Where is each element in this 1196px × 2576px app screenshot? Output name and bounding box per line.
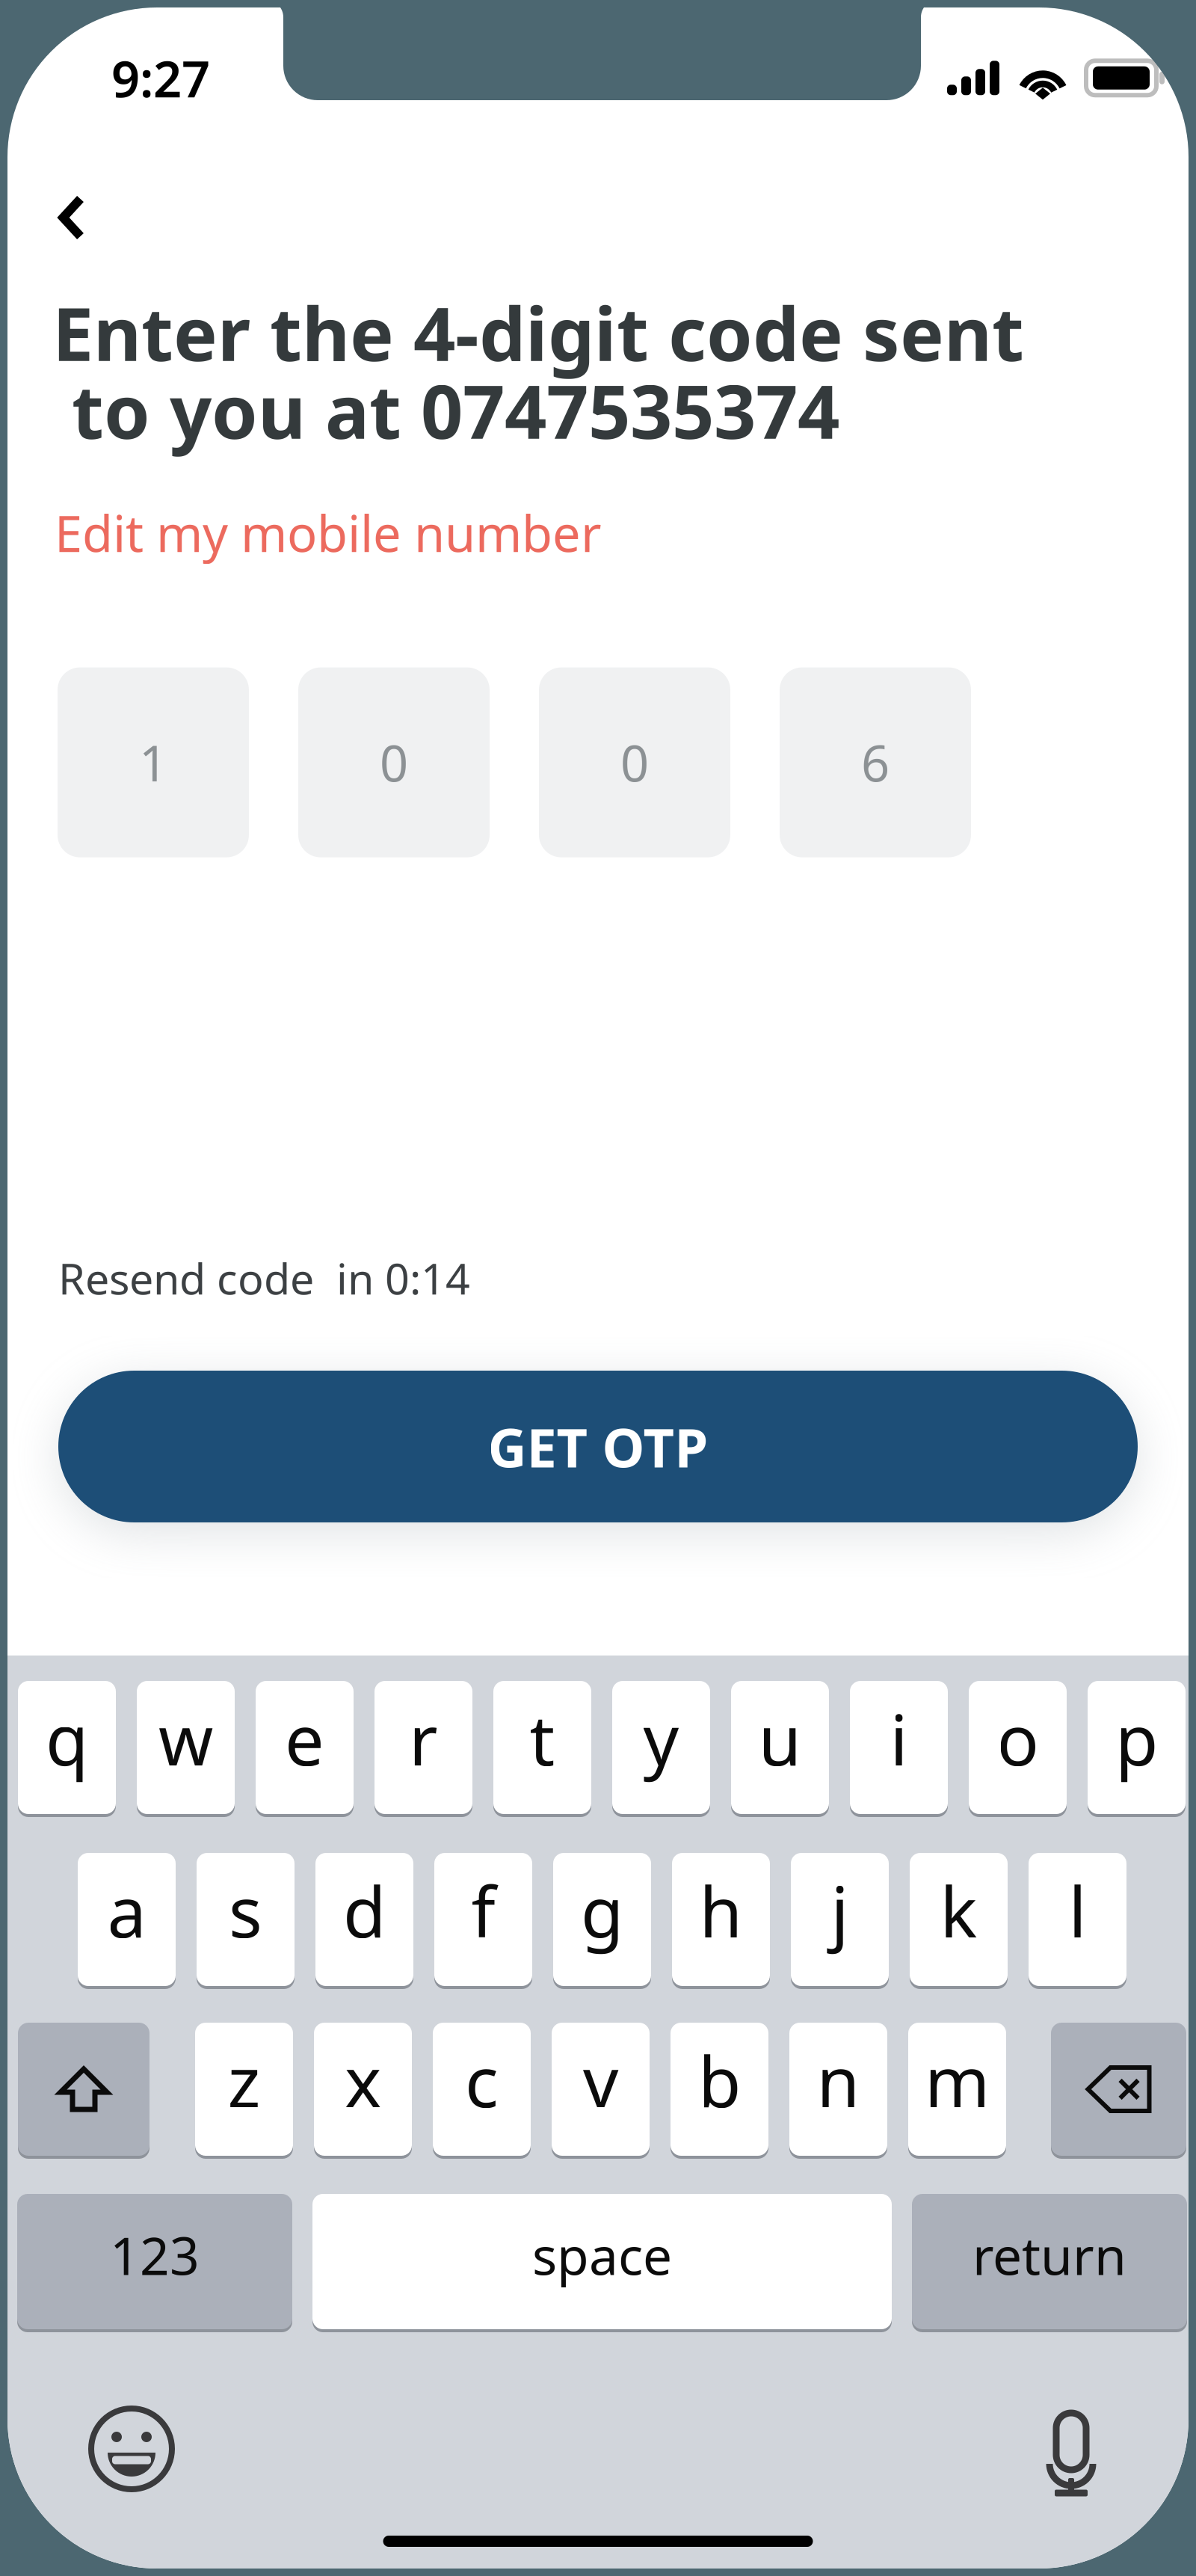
staticText: x	[345, 2034, 381, 2127]
staticText: GET OTP	[488, 1411, 708, 1482]
button[interactable]: Edit my mobile number	[55, 499, 602, 566]
staticText: c	[465, 2034, 499, 2127]
button[interactable]: i	[850, 1681, 948, 1814]
button[interactable]: c	[433, 2023, 531, 2156]
staticText: i	[890, 1692, 908, 1785]
staticText: s	[229, 1864, 262, 1957]
button[interactable]: l	[1029, 1853, 1126, 1986]
button[interactable]: a	[78, 1853, 176, 1986]
staticText: 9:27	[111, 45, 210, 111]
button[interactable]: z	[195, 2023, 293, 2156]
button[interactable]: v	[552, 2023, 650, 2156]
staticText: m	[925, 2034, 990, 2127]
staticText: u	[758, 1692, 802, 1785]
button[interactable]: Back	[36, 182, 108, 253]
button[interactable]: m	[908, 2023, 1006, 2156]
staticText: Edit my mobile number	[55, 499, 602, 566]
staticText: q	[46, 1692, 88, 1785]
button[interactable]: g	[553, 1853, 651, 1986]
button[interactable]: y	[612, 1681, 710, 1814]
button[interactable]: s	[197, 1853, 295, 1986]
button[interactable]: f	[434, 1853, 532, 1986]
button[interactable]: t	[493, 1681, 591, 1814]
button[interactable]: 0	[298, 667, 490, 857]
staticText: return	[972, 2220, 1126, 2289]
button[interactable]: b	[671, 2023, 768, 2156]
staticText: z	[228, 2034, 261, 2127]
button[interactable]: x	[314, 2023, 412, 2156]
button[interactable]: Delete	[1051, 2023, 1186, 2156]
staticText: Resend code in 0:14	[58, 1249, 470, 1306]
staticText: k	[940, 1864, 977, 1957]
staticText: n	[817, 2034, 860, 2127]
button[interactable]: Shift	[18, 2023, 149, 2156]
button[interactable]: n	[789, 2023, 887, 2156]
staticText: g	[581, 1864, 623, 1957]
button[interactable]: 0	[539, 667, 730, 857]
staticText: 6	[861, 729, 890, 795]
button[interactable]: Emoji	[90, 2407, 173, 2491]
staticText: w	[158, 1692, 213, 1785]
button[interactable]: q	[18, 1681, 116, 1814]
staticText: y	[643, 1692, 679, 1785]
staticText: b	[698, 2034, 741, 2127]
staticText: space	[532, 2220, 672, 2289]
staticText: a	[107, 1864, 146, 1957]
button[interactable]: p	[1088, 1681, 1186, 1814]
staticText: 0	[620, 729, 649, 795]
button[interactable]: GET OTP	[58, 1371, 1138, 1522]
button[interactable]: u	[731, 1681, 829, 1814]
button[interactable]: space	[312, 2194, 892, 2329]
button[interactable]: e	[256, 1681, 354, 1814]
staticText: p	[1115, 1692, 1158, 1785]
button[interactable]: o	[969, 1681, 1067, 1814]
staticText: f	[471, 1864, 495, 1957]
staticText: 0	[380, 729, 408, 795]
staticText: j	[831, 1864, 849, 1957]
staticText: r	[409, 1692, 438, 1785]
button[interactable]: 6	[780, 667, 971, 857]
staticText: 1	[139, 729, 167, 795]
button[interactable]: 123	[17, 2194, 292, 2329]
button[interactable]: r	[374, 1681, 472, 1814]
button[interactable]: h	[672, 1853, 770, 1986]
button[interactable]: Dictation	[1046, 2406, 1097, 2492]
button[interactable]: j	[791, 1853, 889, 1986]
button[interactable]: 1	[58, 667, 249, 857]
staticText: v	[583, 2034, 618, 2127]
staticText: h	[699, 1864, 743, 1957]
staticText: l	[1069, 1864, 1086, 1957]
staticText: o	[997, 1692, 1039, 1785]
staticText: t	[530, 1692, 555, 1785]
button[interactable]: d	[315, 1853, 413, 1986]
staticText: 123	[110, 2220, 200, 2289]
button[interactable]: return	[912, 2194, 1187, 2329]
staticText: d	[343, 1864, 386, 1957]
button[interactable]: w	[137, 1681, 235, 1814]
staticText: Enter the 4-digit code sent to you at 07…	[52, 283, 1024, 459]
button[interactable]: k	[910, 1853, 1008, 1986]
staticText: e	[285, 1692, 324, 1785]
